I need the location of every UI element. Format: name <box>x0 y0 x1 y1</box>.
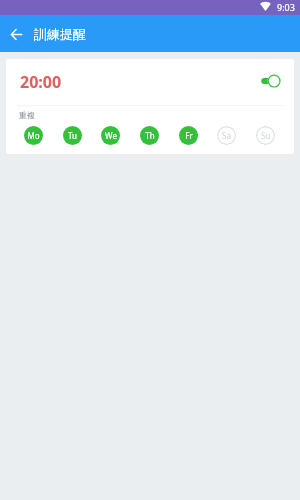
staticText: Fr <box>185 130 193 141</box>
staticText: 訓練提醒 <box>34 26 86 42</box>
button[interactable]: We <box>101 126 120 145</box>
button[interactable]: Fr <box>179 126 198 145</box>
button[interactable]: Mo <box>24 126 43 145</box>
staticText: Sa <box>222 130 231 141</box>
button[interactable]: Back <box>0 15 33 52</box>
button[interactable]: Toggle reminder <box>245 71 281 90</box>
staticText: We <box>105 130 117 141</box>
staticText: Mo <box>27 130 40 141</box>
button[interactable]: Th <box>140 126 159 145</box>
staticText: 9:03 <box>277 1 295 13</box>
staticText: 重複 <box>19 110 35 120</box>
button[interactable]: Sa <box>217 126 236 145</box>
staticText: 20:00 <box>20 71 62 93</box>
button[interactable]: Su <box>256 126 275 145</box>
staticText: Tu <box>68 130 77 141</box>
staticText: Su <box>261 130 271 141</box>
staticText: Th <box>145 130 155 141</box>
button[interactable]: Tu <box>63 126 82 145</box>
